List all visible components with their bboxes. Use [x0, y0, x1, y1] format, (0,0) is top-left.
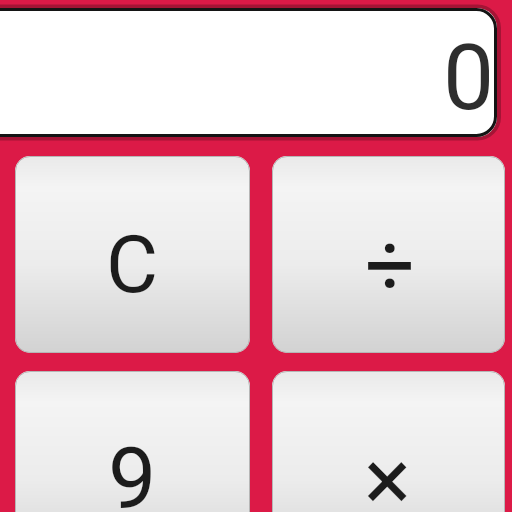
staticText: ÷: [365, 213, 416, 316]
staticText: 9: [108, 428, 157, 512]
button[interactable]: 9: [15, 371, 250, 512]
button[interactable]: ÷: [272, 156, 505, 353]
staticText: C: [106, 218, 159, 312]
button[interactable]: ×: [272, 371, 505, 512]
staticText: 0: [443, 25, 495, 132]
button[interactable]: 0: [0, 8, 497, 137]
button[interactable]: C: [15, 156, 250, 353]
staticText: ×: [364, 428, 411, 512]
